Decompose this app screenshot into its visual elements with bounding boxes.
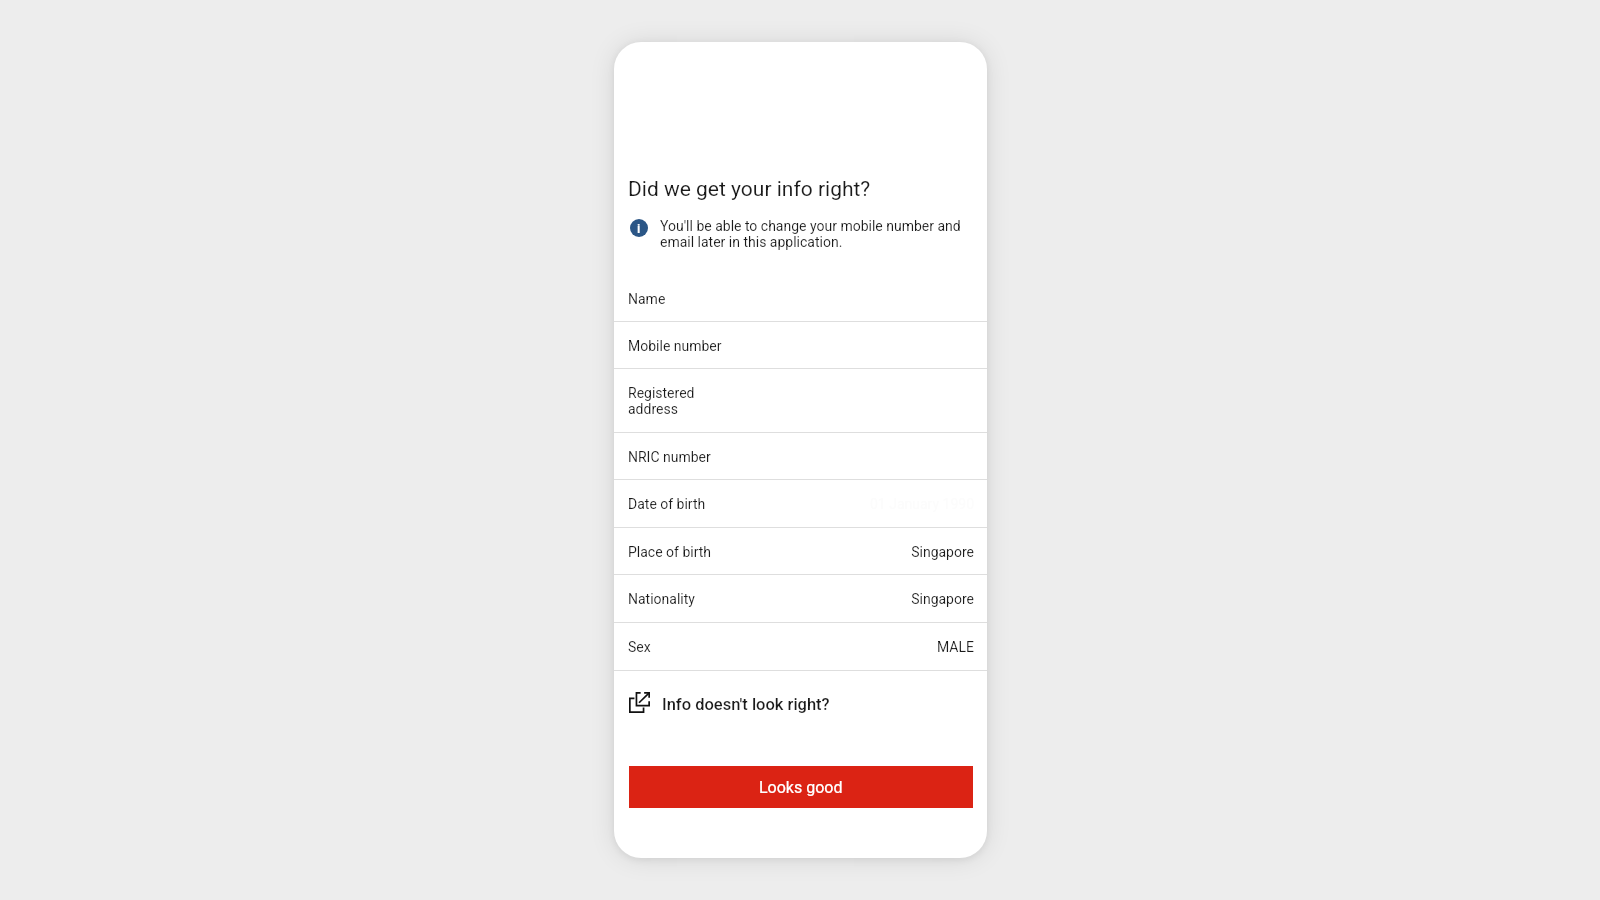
staticText: MALE — [937, 639, 974, 655]
button[interactable]: Mobile number — [614, 322, 987, 369]
button[interactable]: Nationality — [614, 575, 987, 623]
staticText: Nationality — [628, 591, 695, 607]
button[interactable]: Registered address — [614, 369, 987, 433]
staticText: Registered address — [628, 385, 695, 417]
staticText: Looks good — [759, 778, 843, 797]
button[interactable]: Looks good — [629, 766, 973, 808]
staticText: Singapore — [911, 544, 974, 560]
button[interactable]: Name — [614, 275, 987, 322]
staticText: NRIC number — [628, 449, 711, 465]
button[interactable]: Open external link — [629, 671, 830, 737]
staticText: i — [637, 221, 641, 236]
staticText: Date of birth — [628, 496, 706, 512]
staticText: Mobile number — [628, 338, 722, 354]
button[interactable]: Date of birth — [614, 480, 987, 528]
button[interactable]: Sex — [614, 623, 987, 671]
staticText: Did we get your info right? — [628, 177, 871, 202]
staticText: Sex — [628, 639, 651, 655]
staticText: You'll be able to change your mobile num… — [660, 218, 971, 250]
staticText: Info doesn't look right? — [662, 695, 830, 714]
staticText: Singapore — [911, 591, 974, 607]
other: Open external link — [629, 692, 650, 713]
staticText: Name — [628, 291, 666, 307]
staticText: Place of birth — [628, 544, 712, 560]
button[interactable]: NRIC number — [614, 433, 987, 480]
button[interactable]: Place of birth — [614, 528, 987, 575]
